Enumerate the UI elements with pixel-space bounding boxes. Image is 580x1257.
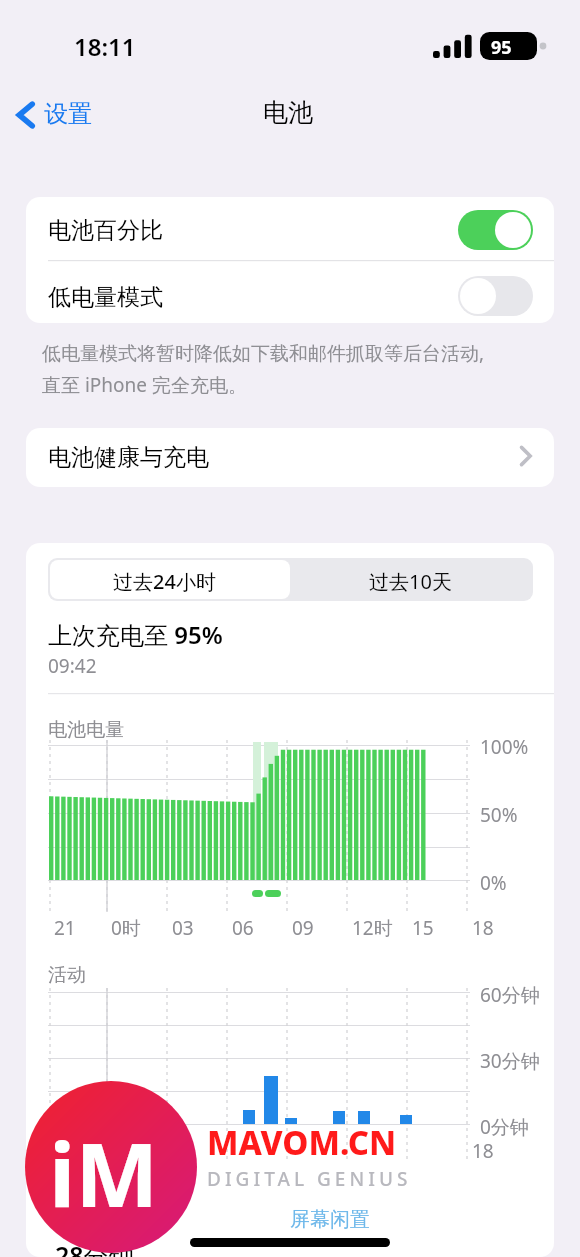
staticText: 06 [232, 915, 254, 941]
staticText: 30分钟 [480, 1048, 540, 1074]
staticText: 95 [491, 35, 512, 60]
staticText: 18:11 [74, 30, 136, 63]
staticText: 0时 [111, 915, 141, 941]
staticText: 18 [472, 915, 494, 941]
button[interactable] [26, 197, 554, 260]
staticText: 0分钟 [480, 1114, 529, 1140]
staticText: 12时 [352, 915, 393, 941]
staticText: 09 [292, 915, 314, 941]
staticText: 50% [480, 802, 518, 828]
staticText: 设置 [44, 99, 92, 129]
staticText: 电池电量 [48, 718, 124, 742]
staticText: 28分钟 [55, 1238, 134, 1257]
staticText: 18 [472, 1138, 494, 1164]
staticText: iM [49, 1113, 159, 1233]
button[interactable] [26, 428, 554, 487]
staticText: 60分钟 [480, 982, 540, 1008]
staticText: MAVOM.CN [207, 1120, 397, 1165]
staticText: 0% [480, 870, 507, 896]
button[interactable] [50, 560, 290, 599]
staticText: 活动 [48, 963, 86, 987]
button[interactable] [292, 560, 531, 599]
staticText: 低电量模式 [48, 283, 163, 312]
staticText: 电池百分比 [48, 216, 163, 245]
staticText: DIGITAL GENIUS [207, 1166, 412, 1192]
staticText: 09:42 [48, 653, 97, 679]
button[interactable] [26, 261, 554, 323]
staticText: 15 [412, 915, 434, 941]
staticText: 低电量模式将暂时降低如下载和邮件抓取等后台活动, [42, 340, 485, 366]
staticText: 直至 iPhone 完全充电。 [42, 372, 247, 398]
staticText: 100% [480, 734, 529, 760]
staticText: 电池健康与充电 [48, 443, 209, 472]
staticText: 上次充电至 95% [48, 618, 223, 651]
staticText: 过去24小时 [113, 568, 216, 595]
staticText: 过去10天 [369, 568, 452, 595]
staticText: 屏幕闲置 [290, 1207, 370, 1232]
button[interactable]: 返回设置 [8, 92, 120, 138]
staticText: 电池 [263, 97, 313, 128]
staticText: 03 [172, 915, 194, 941]
staticText: 21 [54, 915, 76, 941]
